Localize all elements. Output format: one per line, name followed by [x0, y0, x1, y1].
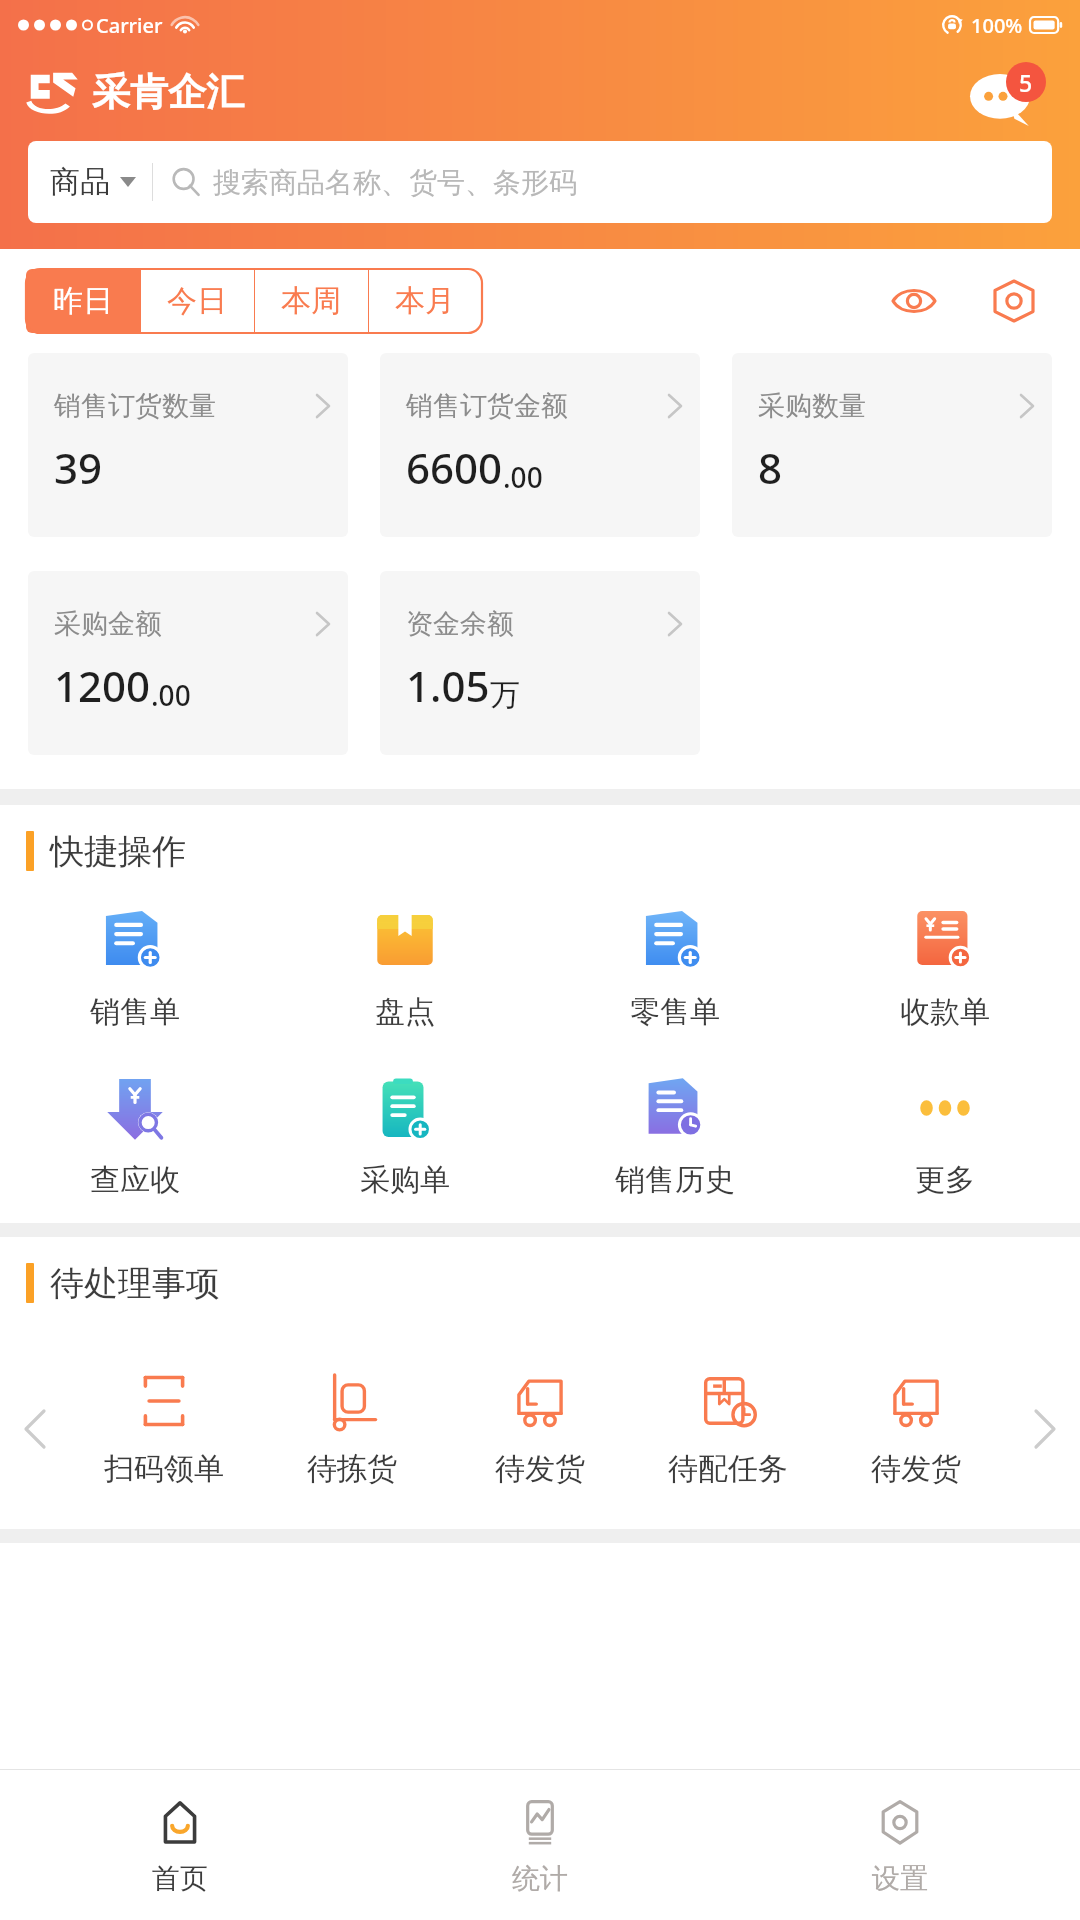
staticText: 资金余额 [406, 607, 514, 641]
staticText: 昨日 [53, 282, 113, 320]
button[interactable]: 待发货 [822, 1370, 1010, 1488]
staticText: 待配任务 [668, 1450, 788, 1488]
button[interactable]: 采购单 [270, 1065, 540, 1209]
staticText: .00 [151, 676, 191, 714]
staticText: 8 [758, 439, 783, 496]
button[interactable]: Messages [970, 62, 1046, 126]
staticText: 采购单 [360, 1161, 450, 1199]
staticText: 采肯企汇 [92, 68, 244, 116]
button[interactable]: 销售单 [0, 897, 270, 1041]
staticText: 零售单 [630, 993, 720, 1031]
staticText: 采购数量 [758, 389, 866, 423]
staticText: 待拣货 [307, 1450, 397, 1488]
button[interactable]: 待拣货 [258, 1370, 446, 1488]
button[interactable]: Next [1010, 1329, 1080, 1529]
staticText: 首页 [152, 1861, 208, 1896]
button[interactable]: 设置 [720, 1770, 1080, 1920]
button[interactable]: 查应收 [0, 1065, 270, 1209]
staticText: 扫码领单 [104, 1450, 224, 1488]
button[interactable]: Settings [982, 269, 1046, 333]
button[interactable]: 销售订货数量 [28, 353, 348, 537]
button[interactable]: 今日 [140, 269, 254, 333]
button[interactable]: 本周 [254, 269, 368, 333]
button[interactable]: 销售订货金额 [380, 353, 700, 537]
button[interactable]: 待配任务 [634, 1370, 822, 1488]
staticText: 待处理事项 [50, 1262, 220, 1305]
staticText: 设置 [872, 1861, 928, 1896]
staticText: 盘点 [375, 993, 435, 1031]
button[interactable]: Visibility [882, 269, 946, 333]
button[interactable]: 采购数量 [732, 353, 1052, 537]
button[interactable]: 零售单 [540, 897, 810, 1041]
staticText: 本周 [281, 282, 341, 320]
staticText: 快捷操作 [50, 830, 186, 873]
staticText: 100% [971, 12, 1023, 39]
button[interactable]: 采购金额 [28, 571, 348, 755]
button[interactable]: 本月 [368, 269, 482, 333]
staticText: 待发货 [495, 1450, 585, 1488]
staticText: 39 [54, 439, 103, 496]
staticText: 待发货 [871, 1450, 961, 1488]
button[interactable]: 盘点 [270, 897, 540, 1041]
staticText: Carrier [96, 12, 163, 39]
button[interactable]: 首页 [0, 1770, 360, 1920]
staticText: 销售订货数量 [54, 389, 216, 423]
button[interactable]: 昨日 [26, 269, 140, 333]
staticText: .00 [503, 458, 543, 496]
button[interactable]: Previous [0, 1329, 70, 1529]
staticText: 销售订货金额 [406, 389, 568, 423]
staticText: 收款单 [900, 993, 990, 1031]
staticText: 销售单 [90, 993, 180, 1031]
button[interactable]: 待发货 [446, 1370, 634, 1488]
staticText: 本月 [395, 282, 455, 320]
button[interactable]: 资金余额 [380, 571, 700, 755]
button[interactable]: 统计 [360, 1770, 720, 1920]
staticText: 更多 [915, 1161, 975, 1199]
button[interactable]: 商品 [28, 141, 1052, 223]
staticText: 搜索商品名称、货号、条形码 [213, 165, 577, 200]
staticText: 1.05 [406, 657, 490, 714]
staticText: 统计 [512, 1861, 568, 1896]
staticText: 采购金额 [54, 607, 162, 641]
staticText: 销售历史 [615, 1161, 735, 1199]
button[interactable]: 销售历史 [540, 1065, 810, 1209]
staticText: 查应收 [90, 1161, 180, 1199]
button[interactable]: 收款单 [810, 897, 1080, 1041]
button[interactable]: 更多 [810, 1065, 1080, 1209]
button[interactable]: 扫码领单 [70, 1370, 258, 1488]
staticText: 1200 [54, 657, 151, 714]
staticText: 5 [1019, 67, 1033, 98]
staticText: 万 [490, 676, 520, 714]
staticText: 商品 [50, 163, 110, 201]
staticText: 今日 [167, 282, 227, 320]
staticText: 6600 [406, 439, 503, 496]
